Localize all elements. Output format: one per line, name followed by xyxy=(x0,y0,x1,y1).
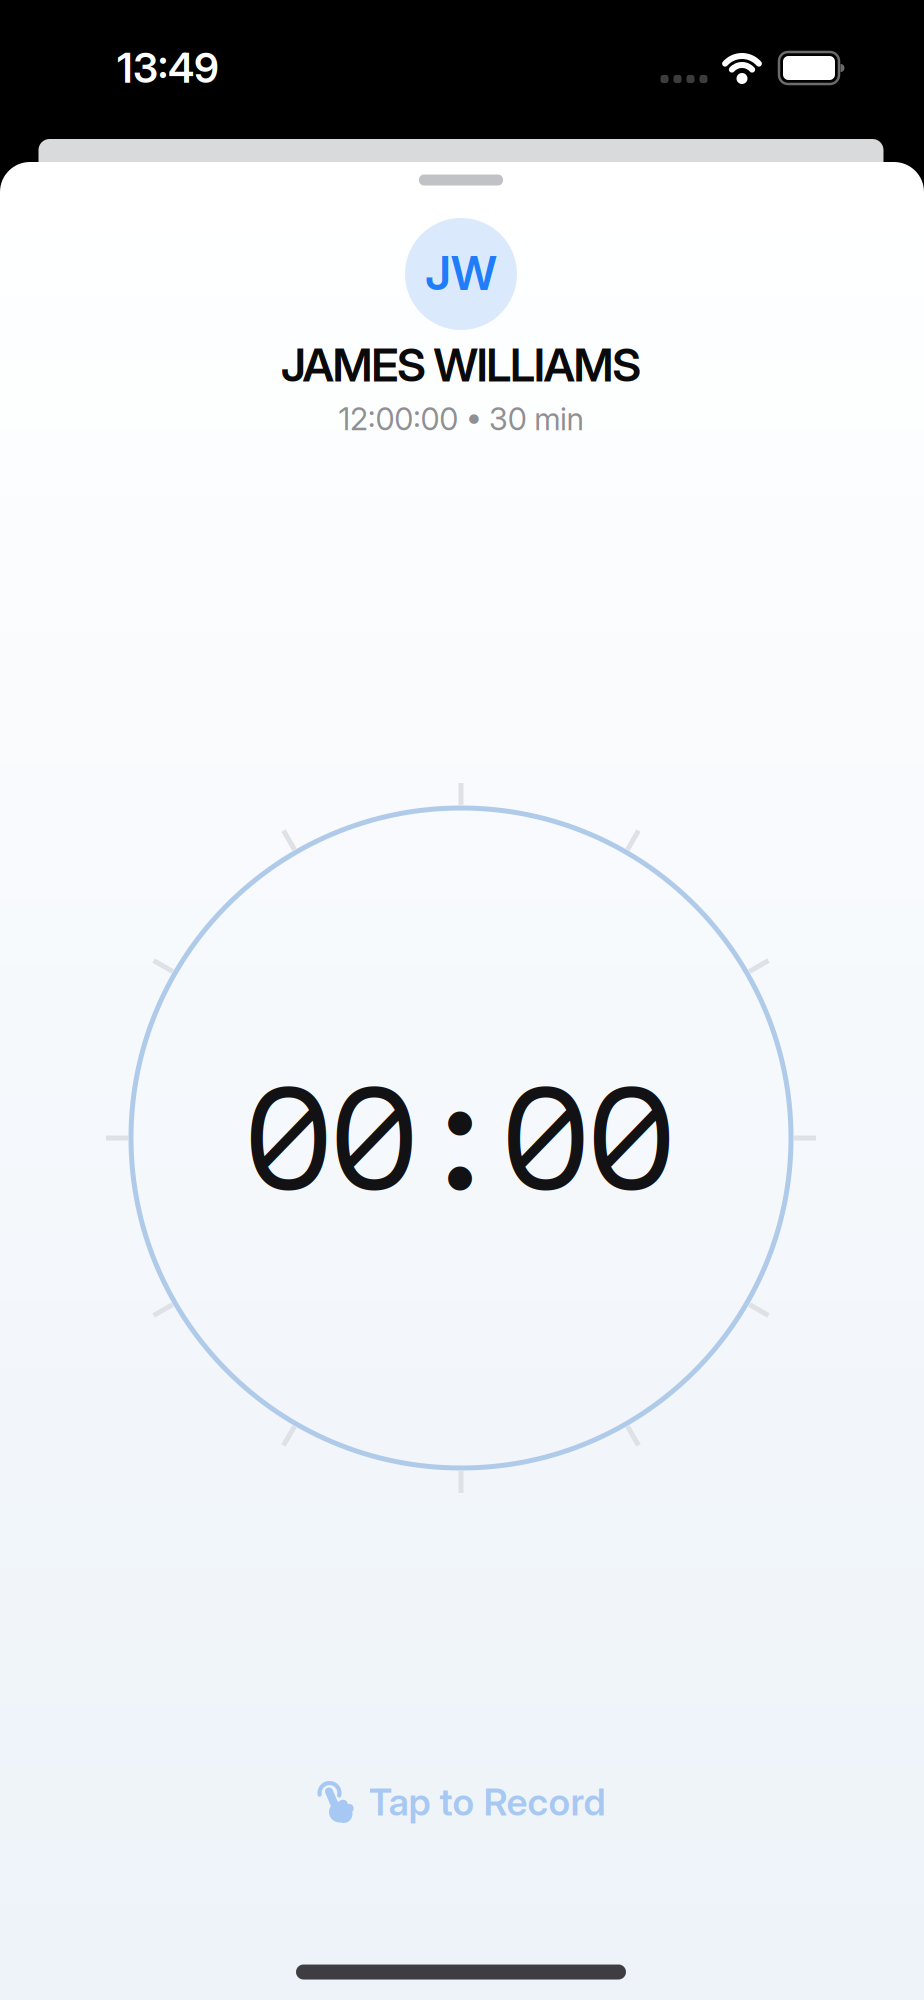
staticText: JW xyxy=(425,245,497,301)
staticText: 00:00 xyxy=(242,1042,678,1232)
staticText: JAMES WILLIAMS xyxy=(281,338,641,392)
staticText: 13:49 xyxy=(117,43,219,93)
button[interactable]: Tap to Record xyxy=(316,1779,605,1825)
staticText: 12:00:00 • 30 min xyxy=(338,400,584,437)
staticText: Tap to Record xyxy=(368,1779,605,1825)
